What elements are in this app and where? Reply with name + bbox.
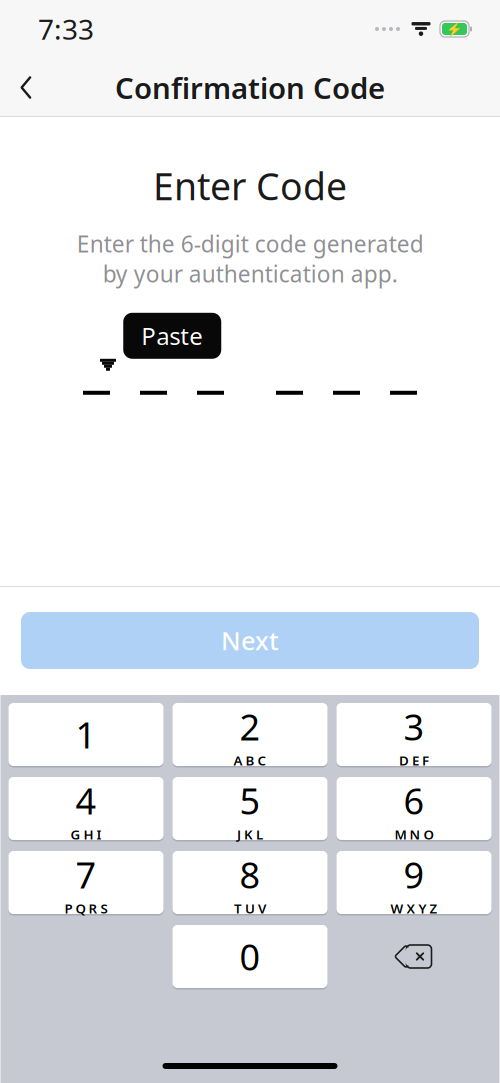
- staticText: Confirmation Code: [115, 68, 385, 107]
- button[interactable]: 7: [8, 850, 163, 915]
- staticText: 3: [403, 703, 424, 750]
- button[interactable]: Back: [0, 58, 52, 117]
- staticText: 6: [403, 777, 424, 824]
- staticText: 9: [403, 851, 424, 898]
- staticText: Enter Code: [153, 161, 347, 211]
- staticText: Next: [221, 624, 279, 657]
- staticText: 7: [75, 851, 96, 898]
- staticText: T U V: [234, 900, 266, 917]
- staticText: 7:33: [38, 10, 94, 48]
- staticText: J K L: [237, 826, 263, 843]
- staticText: P Q R S: [64, 900, 107, 917]
- staticText: 5: [239, 777, 260, 824]
- staticText: 4: [75, 777, 96, 824]
- button[interactable]: 5: [172, 776, 327, 841]
- staticText: 2: [239, 703, 260, 750]
- staticText: G H I: [70, 826, 101, 843]
- staticText: Paste: [141, 320, 203, 352]
- staticText: 1: [75, 711, 96, 758]
- button[interactable]: 1: [8, 702, 163, 767]
- staticText: Enter the 6-digit code generated by your…: [76, 229, 423, 289]
- button[interactable]: 6: [336, 776, 491, 841]
- button[interactable]: Delete: [336, 925, 491, 988]
- button[interactable]: 0: [172, 924, 327, 989]
- staticText: ⚡: [446, 21, 463, 37]
- staticText: A B C: [233, 752, 266, 769]
- staticText: D E F: [399, 752, 429, 769]
- button[interactable]: 3: [336, 702, 491, 767]
- staticText: 8: [239, 851, 260, 898]
- button[interactable]: Paste: [63, 313, 281, 371]
- staticText: W X Y Z: [390, 900, 437, 917]
- staticText: 0: [239, 933, 260, 980]
- button[interactable]: 4: [8, 776, 163, 841]
- button[interactable]: 8: [172, 850, 327, 915]
- button[interactable]: Next: [21, 612, 479, 669]
- button[interactable]: 2: [172, 702, 327, 767]
- button[interactable]: 9: [336, 850, 491, 915]
- staticText: M N O: [394, 826, 433, 843]
